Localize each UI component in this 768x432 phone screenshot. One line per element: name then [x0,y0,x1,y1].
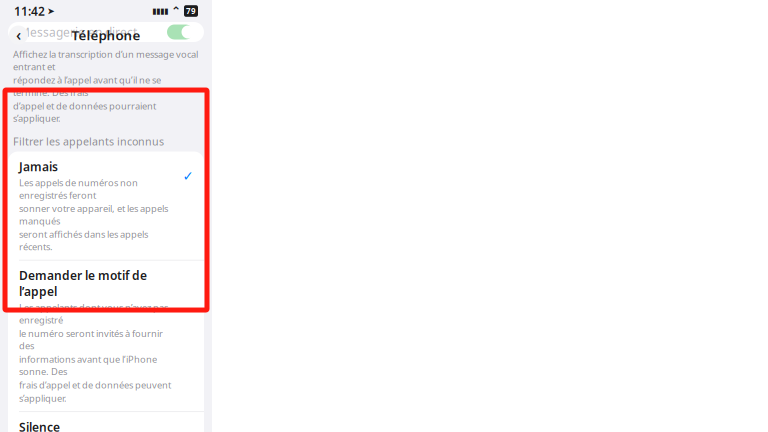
staticText: Affichez la transcription d’un message v… [13,48,198,73]
staticText: frais d’appel et de données peuvent [19,379,171,391]
staticText: ▮▮▮▮ [152,6,168,16]
staticText: Demander le motif de l’appel [19,267,147,299]
staticText: le numéro seront invités à fournir des [19,327,163,352]
staticText: Filtrer les appelants inconnus [13,134,164,149]
button[interactable]: Demander le motif de l’appel [8,260,204,411]
staticText: d’appel et de données pourraient s’appli… [13,100,156,124]
staticText: 11:42 [14,3,45,19]
staticText: ➤ [47,6,55,16]
staticText: 79 [186,6,196,16]
staticText: Messagerie en direct [19,24,137,40]
staticText: Silence [19,419,60,432]
staticText: informations avant que l’iPhone sonne. D… [19,353,157,378]
staticText: Les appelants dont vous n’avez pas enreg… [19,301,168,326]
button[interactable]: Jamais [8,151,204,260]
button[interactable]: Silence [8,412,204,432]
button[interactable]: Retour [9,24,28,46]
staticText: Jamais [19,158,58,174]
staticText: seront affichés dans les appels récents. [19,228,148,253]
staticText: Les appels de numéros non enregistrés fe… [19,176,138,201]
staticText: ‹ [16,24,21,45]
staticText: s’appliquer. [19,392,67,404]
staticText: Téléphone [71,26,140,44]
staticText: répondez à l’appel avant qu’il ne se ter… [13,74,161,99]
staticText: ✓ [182,168,193,184]
staticText: ⌃ [171,4,181,18]
staticText: sonner votre appareil, et les appels man… [19,202,168,227]
